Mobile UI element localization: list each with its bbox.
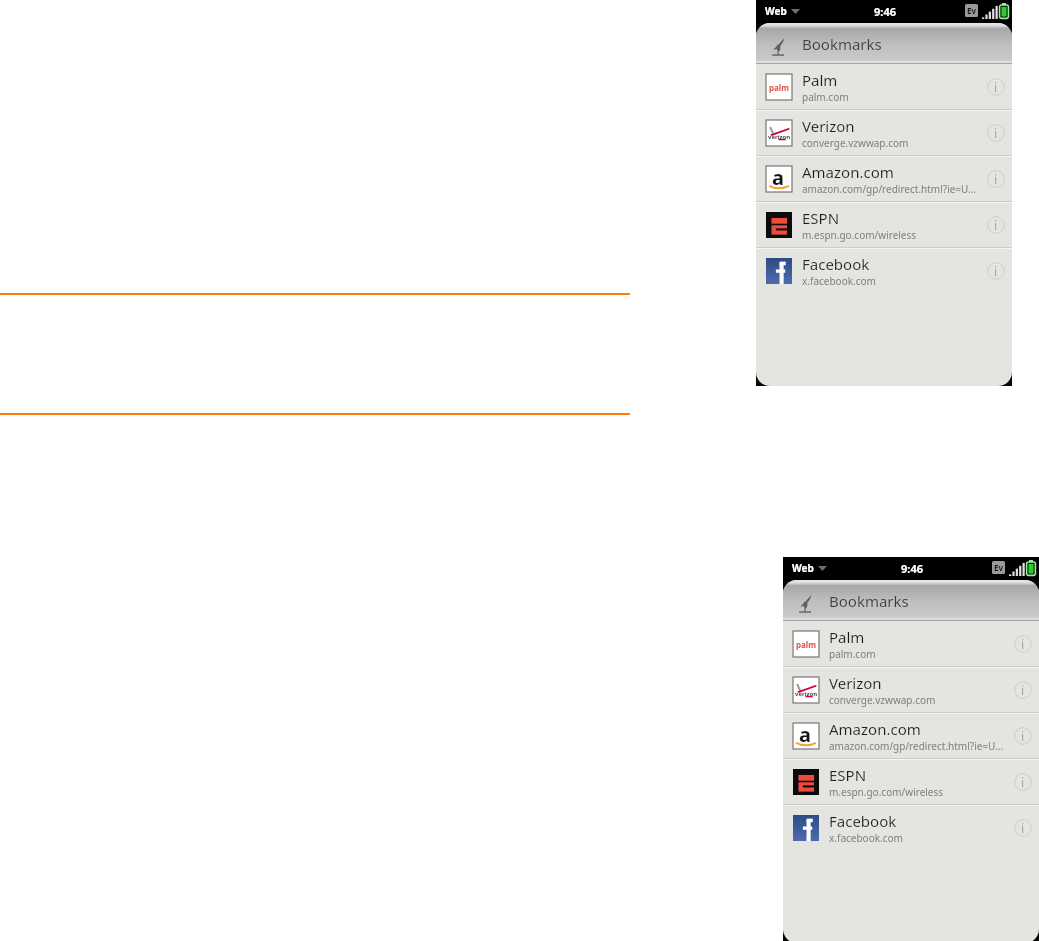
staticText: Amazon.com (829, 719, 921, 739)
staticText: a (799, 721, 811, 747)
staticText: Bookmarks (829, 591, 909, 611)
staticText: converge.vzwwap.com (802, 136, 909, 150)
staticText: ESPN (829, 765, 867, 785)
staticText: Amazon.com (802, 162, 894, 182)
button[interactable]: palm (756, 64, 1012, 110)
staticText: Bookmarks (802, 34, 882, 54)
staticText: palm.com (802, 90, 849, 104)
button[interactable]: Info about Palm (1008, 629, 1038, 659)
staticText: palm (769, 82, 790, 93)
staticText: Facebook (802, 254, 870, 274)
button[interactable]: Info about Palm (981, 72, 1011, 102)
button[interactable]: Info about ESPN (1008, 767, 1038, 797)
button[interactable]: Info about Verizon (1008, 675, 1038, 705)
staticText: i (1021, 728, 1025, 744)
button[interactable]: Info about Amazon.com (981, 164, 1011, 194)
staticText: 9:46 (874, 4, 896, 19)
staticText: verizon (768, 133, 791, 141)
staticText: Web (792, 561, 814, 575)
staticText: Palm (802, 70, 838, 90)
staticText: x.facebook.com (829, 831, 903, 845)
button[interactable]: verizon (783, 667, 1039, 713)
staticText: amazon.com/gp/redirect.html?ie=U... (802, 182, 977, 196)
button[interactable]: Bookmarks (756, 23, 1012, 64)
button[interactable]: Info about Verizon (981, 118, 1011, 148)
staticText: x.facebook.com (802, 274, 876, 288)
staticText: 9:46 (901, 561, 923, 576)
button[interactable]: Facebook (783, 805, 1039, 851)
staticText: Ev (994, 562, 1004, 573)
button[interactable]: a (783, 713, 1039, 759)
staticText: Verizon (802, 116, 855, 136)
staticText: i (994, 125, 998, 141)
button[interactable]: Facebook (756, 248, 1012, 294)
button[interactable]: Info about Amazon.com (1008, 721, 1038, 751)
staticText: Palm (829, 627, 865, 647)
staticText: amazon.com/gp/redirect.html?ie=U... (829, 739, 1004, 753)
staticText: i (1021, 636, 1025, 652)
button[interactable]: a (756, 156, 1012, 202)
staticText: i (994, 217, 998, 233)
staticText: Verizon (829, 673, 882, 693)
button[interactable]: Info about Facebook (1008, 813, 1038, 843)
button[interactable]: Info about Facebook (981, 256, 1011, 286)
staticText: a (772, 164, 784, 190)
staticText: i (994, 263, 998, 279)
staticText: verizon (795, 690, 818, 698)
staticText: i (1021, 682, 1025, 698)
button[interactable]: ESPN (783, 759, 1039, 805)
button[interactable]: verizon (756, 110, 1012, 156)
staticText: palm (796, 639, 817, 650)
staticText: i (994, 79, 998, 95)
staticText: ESPN (802, 208, 840, 228)
staticText: Web (765, 4, 787, 18)
staticText: i (1021, 774, 1025, 790)
button[interactable]: Bookmarks (783, 580, 1039, 621)
staticText: converge.vzwwap.com (829, 693, 936, 707)
staticText: palm.com (829, 647, 876, 661)
staticText: Facebook (829, 811, 897, 831)
staticText: m.espn.go.com/wireless (829, 785, 944, 799)
staticText: i (994, 171, 998, 187)
button[interactable]: Info about ESPN (981, 210, 1011, 240)
staticText: i (1021, 820, 1025, 836)
staticText: Ev (967, 5, 977, 16)
staticText: m.espn.go.com/wireless (802, 228, 917, 242)
button[interactable]: palm (783, 621, 1039, 667)
button[interactable]: ESPN (756, 202, 1012, 248)
